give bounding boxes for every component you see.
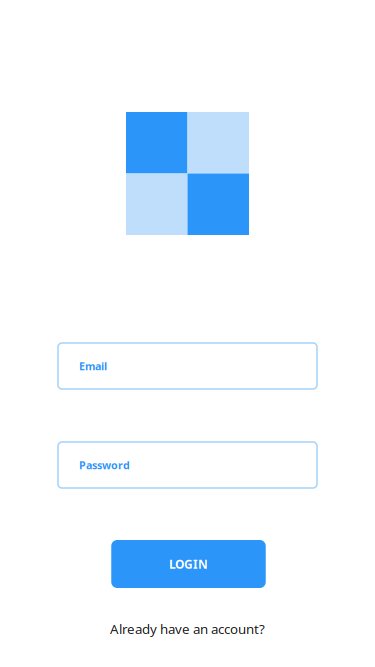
button[interactable]: Password xyxy=(58,442,317,488)
button[interactable]: LOGIN xyxy=(111,540,266,588)
staticText: Password xyxy=(79,458,130,472)
button[interactable]: Email xyxy=(58,343,317,389)
staticText: LOGIN xyxy=(169,556,208,572)
staticText: Email xyxy=(79,359,107,373)
button[interactable]: Already have an account? xyxy=(110,620,265,638)
staticText: Already have an account? xyxy=(110,620,265,638)
